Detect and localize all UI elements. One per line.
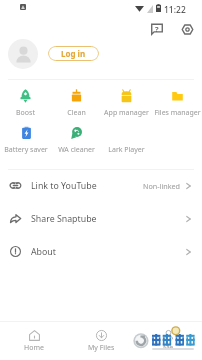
button[interactable]: App manager <box>101 84 152 117</box>
button[interactable]: Profile <box>8 39 38 69</box>
staticText: Lark Player <box>108 145 145 154</box>
button[interactable]: Share Snaptube <box>0 202 202 235</box>
button[interactable]: Clean <box>51 84 102 117</box>
button[interactable]: Battery saver <box>0 121 51 154</box>
staticText: 11:22 <box>164 4 186 16</box>
staticText: Clean <box>67 108 86 117</box>
button[interactable]: Files manager <box>152 84 202 117</box>
staticText: Me <box>163 343 174 353</box>
button[interactable]: Help and feedback <box>145 17 169 41</box>
staticText: Share Snaptube <box>31 213 97 225</box>
staticText: Boost <box>16 108 35 117</box>
button[interactable]: Boost <box>0 84 51 117</box>
staticText: WA cleaner <box>58 145 95 154</box>
staticText: App manager <box>104 108 149 117</box>
staticText: About <box>31 246 56 258</box>
button[interactable]: Settings <box>175 17 199 41</box>
button[interactable]: My Files <box>68 322 135 360</box>
staticText: Battery saver <box>4 145 48 154</box>
staticText: Link to YouTube <box>31 180 97 192</box>
button[interactable]: Log in <box>48 46 99 61</box>
button[interactable]: Lark Player <box>101 121 152 154</box>
button[interactable]: About <box>0 235 202 268</box>
staticText: Non-linked <box>143 181 181 191</box>
staticText: My Files <box>88 343 115 353</box>
staticText: Log in <box>61 48 86 59</box>
button[interactable]: WA cleaner <box>51 121 102 154</box>
button[interactable]: Link to YouTube <box>0 169 202 202</box>
staticText: Home <box>24 343 44 353</box>
staticText: ? <box>155 24 159 34</box>
button[interactable]: Me <box>135 322 202 360</box>
staticText: Files manager <box>154 108 201 117</box>
button[interactable]: Home <box>0 322 68 360</box>
